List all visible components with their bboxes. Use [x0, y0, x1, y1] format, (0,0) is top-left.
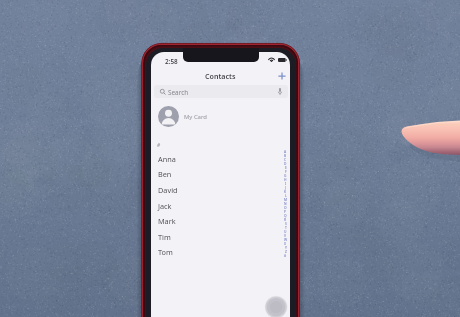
button[interactable]: Add contact [276, 70, 288, 82]
staticText: N [284, 201, 287, 205]
staticText: S [285, 221, 287, 225]
staticText: 2:58 [165, 57, 178, 66]
staticText: D [284, 161, 287, 165]
staticText: R [284, 217, 287, 221]
staticText: H [284, 177, 287, 181]
staticText: O [284, 205, 287, 209]
staticText: L [285, 193, 287, 197]
staticText: Z [285, 249, 287, 253]
staticText: F [285, 169, 287, 173]
staticText: Tim [158, 232, 171, 242]
staticText: Contacts [205, 71, 236, 81]
staticText: Anna [158, 154, 176, 164]
staticText: Y [285, 245, 287, 249]
staticText: K [284, 189, 287, 193]
staticText: # [157, 142, 161, 149]
button[interactable]: Alphabet index [283, 149, 288, 257]
staticText: A [284, 149, 287, 153]
staticText: C [284, 157, 287, 161]
staticText: Tom [158, 247, 173, 257]
staticText: X [284, 241, 287, 245]
button[interactable]: Jack [151, 198, 290, 214]
button[interactable]: David [151, 182, 290, 198]
staticText: Ben [158, 169, 172, 179]
staticText: My Card [184, 113, 207, 121]
staticText: Q [284, 213, 287, 217]
staticText: B [284, 153, 287, 157]
button[interactable]: Anna [151, 151, 290, 167]
staticText: M [284, 197, 288, 201]
button[interactable]: Ben [151, 166, 290, 182]
button[interactable]: Tim [151, 229, 290, 245]
staticText: E [285, 165, 287, 169]
staticText: U [284, 229, 287, 233]
staticText: P [284, 209, 287, 213]
button[interactable]: Search [154, 85, 288, 98]
staticText: David [158, 185, 178, 195]
button[interactable]: Tom [151, 244, 290, 260]
staticText: V [284, 233, 287, 237]
staticText: G [284, 173, 287, 177]
staticText: I [285, 181, 287, 185]
staticText: Jack [158, 201, 172, 211]
staticText: J [285, 185, 286, 189]
button[interactable]: Mark [151, 213, 290, 229]
staticText: Search [168, 88, 189, 97]
staticText: # [284, 253, 287, 257]
staticText: T [285, 225, 287, 229]
button[interactable]: My Card [151, 101, 290, 132]
staticText: Mark [158, 216, 176, 226]
staticText: W [284, 237, 288, 241]
